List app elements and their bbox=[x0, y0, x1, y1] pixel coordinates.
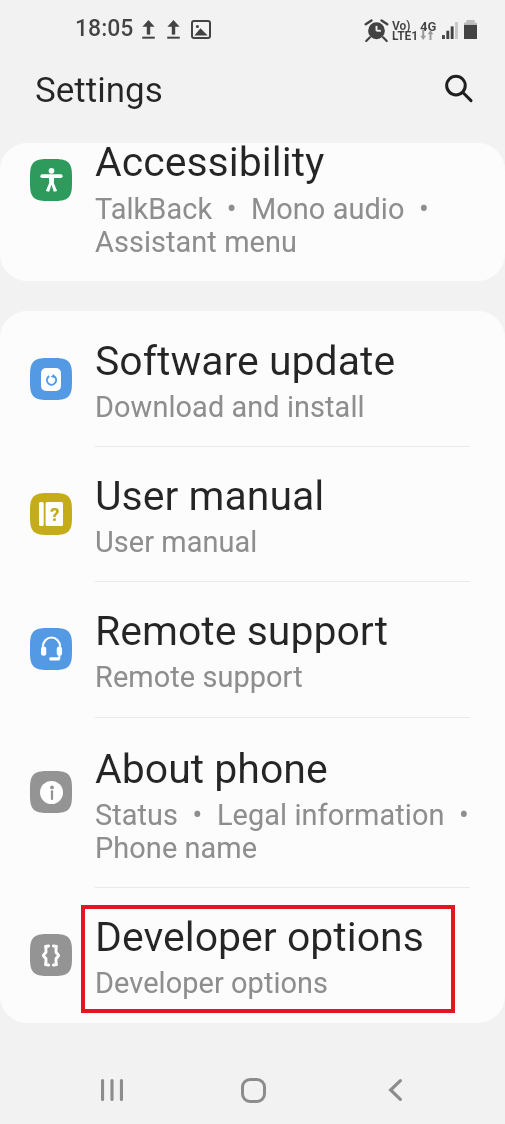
staticText: Settings bbox=[35, 70, 163, 111]
staticText: Developer options bbox=[95, 966, 329, 1000]
staticText: 18:05 bbox=[75, 15, 134, 42]
staticText: Download and install bbox=[95, 390, 365, 424]
button[interactable]: Accessibility bbox=[0, 143, 505, 281]
staticText: Remote support bbox=[95, 660, 303, 694]
staticText: About phone bbox=[95, 745, 328, 793]
button[interactable]: Recents bbox=[70, 1048, 154, 1124]
button[interactable]: ? bbox=[0, 446, 505, 581]
staticText: TalkBack • Mono audio • Assistant menu bbox=[95, 192, 429, 259]
button[interactable]: Back bbox=[353, 1048, 437, 1124]
staticText: Remote support bbox=[95, 607, 389, 655]
button[interactable]: Developer options bbox=[0, 887, 505, 1023]
staticText: User manual bbox=[95, 525, 258, 559]
button[interactable]: Software update bbox=[0, 311, 505, 446]
staticText: ? bbox=[50, 503, 60, 525]
staticText: Vo) bbox=[392, 19, 411, 33]
staticText: Accessibility bbox=[95, 143, 325, 186]
staticText: Developer options bbox=[95, 913, 424, 961]
staticText: LTE1 bbox=[392, 29, 419, 43]
button[interactable]: Search bbox=[434, 65, 482, 113]
button[interactable]: Remote support bbox=[0, 581, 505, 717]
staticText: 4G bbox=[420, 19, 437, 34]
button[interactable]: About phone bbox=[0, 717, 505, 887]
staticText: User manual bbox=[95, 472, 325, 520]
staticText: Software update bbox=[95, 337, 396, 385]
button[interactable]: Home bbox=[211, 1048, 295, 1124]
staticText: Status • Legal information • Phone name bbox=[95, 798, 469, 865]
